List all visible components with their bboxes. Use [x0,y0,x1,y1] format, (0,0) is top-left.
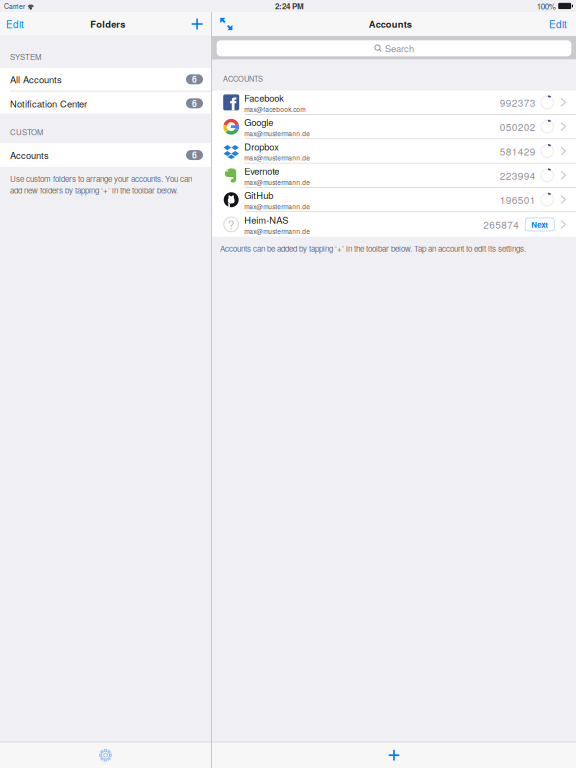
button[interactable]: Search [212,40,576,56]
button[interactable]: Accounts [0,143,211,167]
staticText: Carrier [4,1,25,11]
staticText: ACCOUNTS [223,73,263,84]
staticText: 6 [192,73,197,85]
staticText: max@mustermann.de [244,226,310,236]
staticText: 581429 [500,144,536,158]
staticText: Google [244,115,273,129]
staticText: Use custom folders to arrange your accou… [10,173,192,196]
button[interactable]: Google [212,115,576,139]
staticText: GitHub [244,188,273,202]
staticText: 100% [537,0,556,12]
staticText: Accounts [369,17,412,31]
staticText: Next [531,219,548,230]
staticText: Folders [90,17,125,31]
button[interactable]: Add folder [182,12,211,36]
button[interactable]: Facebook [212,91,576,115]
button[interactable]: Edit [0,12,34,36]
button[interactable]: Notification Center [0,91,211,115]
button[interactable]: ? [212,212,576,237]
staticText: 265874 [483,217,519,232]
button[interactable]: Dropbox [212,139,576,164]
button[interactable]: Expand [212,12,241,36]
button[interactable]: Evernote [212,164,576,188]
staticText: Notification Center [10,97,87,110]
staticText: 6 [192,97,197,109]
staticText: max@mustermann.de [244,129,310,138]
staticText: 992373 [500,95,536,110]
staticText: 223994 [500,168,536,182]
staticText: 050202 [500,120,536,134]
staticText: Facebook [244,91,284,104]
staticText: SYSTEM [10,51,41,62]
button[interactable]: Settings [85,742,125,768]
staticText: 6 [192,149,197,161]
staticText: All Accounts [10,73,62,86]
staticText: Edit [549,17,567,31]
staticText: max@mustermann.de [244,153,310,162]
staticText: 196501 [500,193,536,207]
button[interactable]: All Accounts [0,68,211,91]
button[interactable]: Edit [540,12,576,36]
staticText: ? [228,216,235,233]
staticText: max@mustermann.de [244,177,310,187]
staticText: max@mustermann.de [244,202,310,211]
button[interactable]: Add account [374,742,414,768]
staticText: Evernote [244,164,279,177]
staticText: Dropbox [244,140,279,153]
staticText: Edit [6,17,24,31]
staticText: Accounts [10,148,49,162]
staticText: CUSTOM [10,126,43,138]
staticText: max@facebook.com [244,104,305,114]
button[interactable]: GitHub [212,188,576,212]
staticText: 2:24 PM [275,0,304,12]
staticText: Search [385,42,414,55]
staticText: Heim-NAS [244,213,288,226]
staticText: Accounts can be added by tapping ‘+’ in … [220,243,526,254]
